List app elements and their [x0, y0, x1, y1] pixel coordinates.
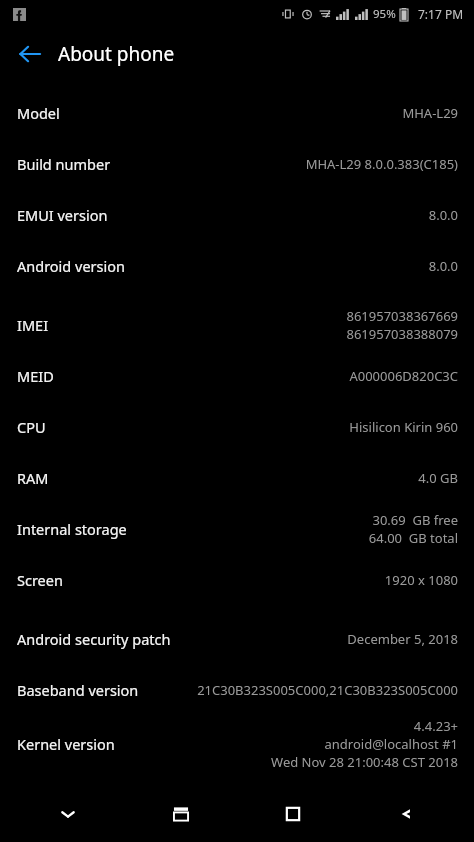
button[interactable]: Back [361, 786, 451, 842]
button[interactable]: Split screen [136, 786, 226, 842]
button[interactable]: Back [8, 32, 52, 76]
staticText: Kernel version [17, 734, 115, 754]
staticText: 1920 x 1080 [384, 571, 458, 589]
staticText: 95% [373, 6, 396, 22]
staticText: 21C30B323S005C000,21C30B323S005C000 [197, 681, 458, 699]
staticText: MEID [17, 366, 54, 386]
button[interactable]: RAM [0, 452, 474, 503]
staticText: Android version [17, 256, 125, 276]
button[interactable]: Home [248, 786, 338, 842]
staticText: 8.0.0 [428, 206, 458, 224]
staticText: About phone [58, 41, 175, 67]
staticText: A000006D820C3C [349, 367, 458, 385]
button[interactable]: Kernel version [0, 715, 474, 773]
button[interactable]: Screen [0, 554, 474, 605]
staticText: android@localhost #1 [324, 735, 458, 753]
staticText: Internal storage [17, 519, 127, 539]
staticText: 4.0 GB [418, 469, 458, 487]
staticText: EMUI version [17, 205, 108, 225]
staticText: Baseband version [17, 680, 139, 700]
staticText: IMEI [17, 315, 49, 335]
staticText: Screen [17, 570, 63, 590]
button[interactable]: Hide navigation bar [23, 786, 113, 842]
button[interactable]: Model [0, 87, 474, 138]
staticText: 8.0.0 [428, 257, 458, 275]
button[interactable]: MEID [0, 350, 474, 401]
button[interactable]: EMUI version [0, 189, 474, 240]
staticText: Model [17, 103, 60, 123]
staticText: 4.4.23+ [413, 717, 458, 735]
button[interactable]: CPU [0, 401, 474, 452]
staticText: 7:17 PM [418, 6, 464, 22]
button[interactable]: IMEI [0, 299, 474, 350]
staticText: Wed Nov 28 21:00:48 CST 2018 [271, 753, 458, 771]
button[interactable]: Baseband version [0, 664, 474, 715]
button[interactable]: Build number [0, 138, 474, 189]
staticText: 861957038367669 [346, 307, 458, 325]
staticText: 30.69 GB free [372, 511, 458, 529]
staticText: December 5, 2018 [347, 630, 458, 648]
staticText: 861957038388079 [346, 325, 458, 343]
staticText: RAM [17, 468, 49, 488]
staticText: 64.00 GB total [368, 529, 458, 547]
button[interactable]: Android security patch [0, 613, 474, 664]
staticText: Android security patch [17, 629, 171, 649]
button[interactable]: Internal storage [0, 503, 474, 554]
staticText: CPU [17, 417, 46, 437]
staticText: MHA-L29 [402, 104, 458, 122]
button[interactable]: Android version [0, 240, 474, 291]
staticText: Hisilicon Kirin 960 [349, 418, 458, 436]
staticText: MHA-L29 8.0.0.383(C185) [305, 155, 458, 173]
staticText: Build number [17, 154, 111, 174]
